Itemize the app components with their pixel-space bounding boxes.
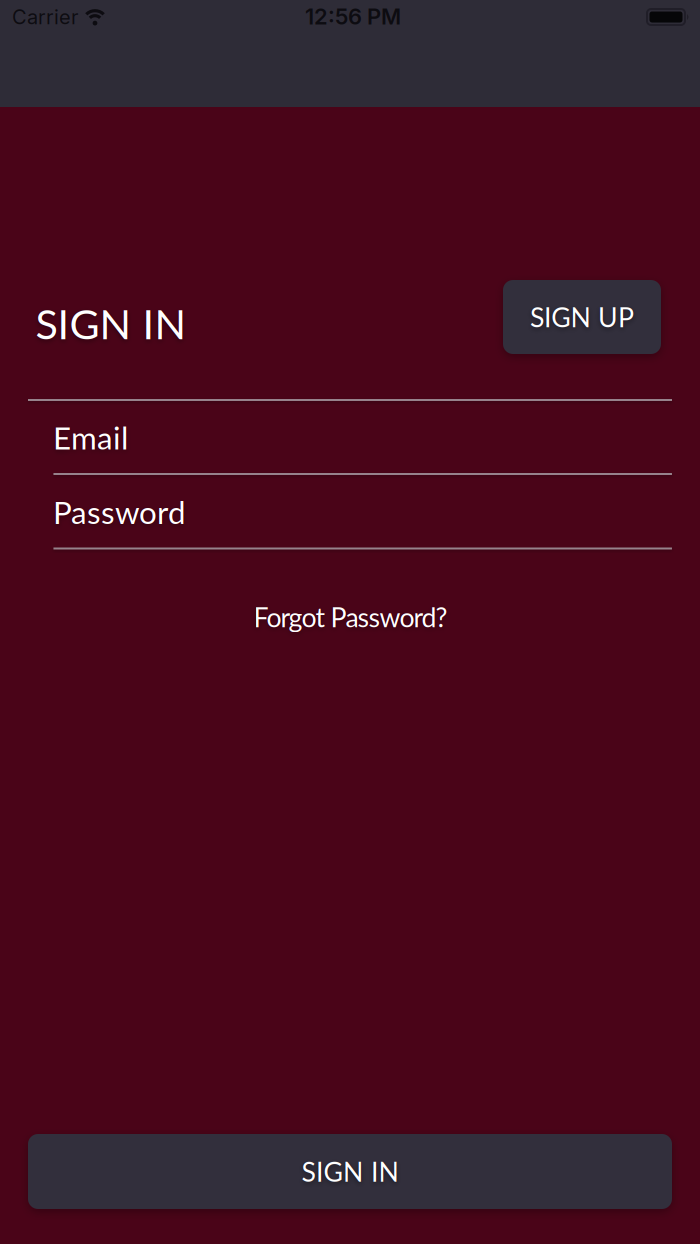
button[interactable]: Email [53,407,669,467]
staticText: 12:56 PM [305,3,401,30]
staticText: SIGN UP [530,301,634,333]
staticText: Password [53,493,186,531]
button[interactable]: Forgot Password? [253,601,447,633]
staticText: SIGN IN [35,298,186,348]
button[interactable]: SIGN IN [28,1134,672,1209]
staticText: Email [53,418,128,456]
staticText: SIGN IN [301,1155,398,1187]
staticText: Carrier [12,5,78,29]
button[interactable]: SIGN UP [503,280,661,354]
staticText: Forgot Password? [253,601,447,633]
button[interactable]: Password [53,482,669,542]
